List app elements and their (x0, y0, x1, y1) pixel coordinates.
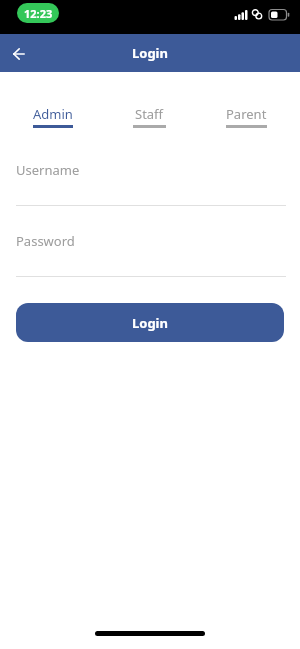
staticText: Staff (135, 105, 164, 123)
button[interactable]: Admin (5, 105, 101, 128)
button[interactable]: Login (16, 303, 284, 342)
staticText: Login (132, 314, 168, 332)
button[interactable]: Parent (198, 105, 295, 128)
staticText: Password (16, 232, 75, 250)
staticText: 12:23 (24, 6, 53, 21)
button[interactable]: Staff (101, 105, 198, 128)
staticText: Login (132, 44, 168, 62)
staticText: Parent (226, 105, 267, 123)
staticText: Username (16, 161, 80, 179)
button[interactable]: Password (0, 232, 300, 277)
button[interactable]: Username (0, 161, 300, 206)
staticText: Admin (33, 105, 73, 123)
button[interactable] (3, 37, 35, 69)
